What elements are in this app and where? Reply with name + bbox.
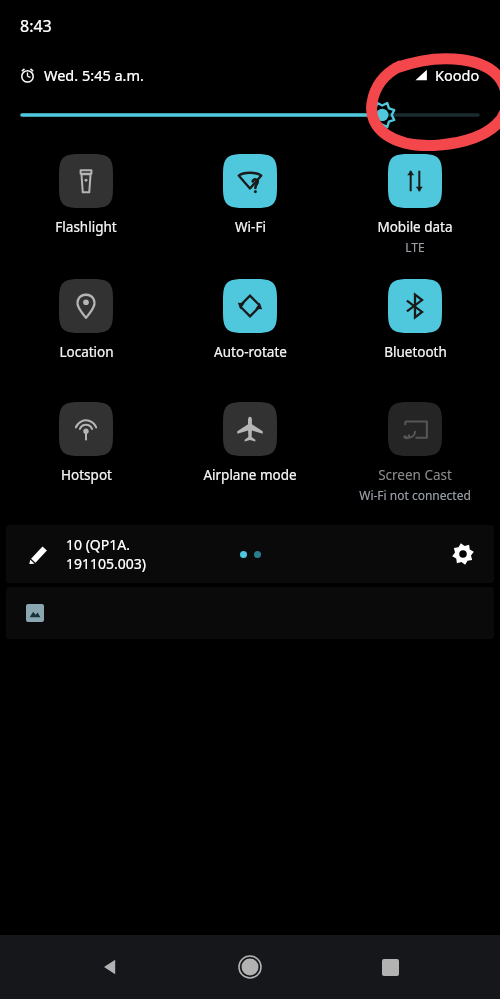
staticText: Auto-rotate: [214, 343, 287, 361]
button[interactable]: Wi-Fi: [171, 154, 329, 236]
staticText: Flashlight: [55, 218, 117, 236]
button[interactable]: Brightness: [22, 98, 478, 132]
button[interactable]: Hotspot: [7, 402, 165, 484]
button[interactable]: Airplane mode: [171, 402, 329, 484]
button[interactable]: Location: [7, 279, 165, 361]
staticText: Screen Cast: [378, 466, 452, 484]
button[interactable]: [6, 587, 494, 639]
staticText: Koodo: [435, 65, 480, 85]
staticText: Mobile data: [377, 218, 453, 236]
staticText: Wi-Fi: [235, 218, 266, 236]
button[interactable]: Settings: [446, 537, 480, 571]
button[interactable]: Recent apps: [368, 945, 412, 989]
button[interactable]: Flashlight: [7, 154, 165, 236]
staticText: Hotspot: [61, 466, 112, 484]
staticText: Airplane mode: [203, 466, 297, 484]
staticText: Wed. 5:45 a.m.: [44, 65, 144, 85]
button[interactable]: Bluetooth: [336, 279, 494, 361]
button[interactable]: Edit tiles: [24, 539, 54, 569]
button[interactable]: Back: [88, 945, 132, 989]
staticText: 8:43: [20, 15, 52, 37]
button[interactable]: Koodo: [414, 65, 480, 85]
staticText: 10 (QP1A. 191105.003): [66, 535, 147, 573]
button[interactable]: Home: [228, 945, 272, 989]
staticText: LTE: [405, 239, 425, 255]
staticText: Bluetooth: [384, 343, 447, 361]
staticText: Location: [59, 343, 114, 361]
button[interactable]: Auto-rotate: [171, 279, 329, 361]
button[interactable]: Mobile data: [336, 154, 494, 255]
staticText: Wi-Fi not connected: [359, 487, 471, 503]
button[interactable]: Screen Cast: [336, 402, 494, 503]
